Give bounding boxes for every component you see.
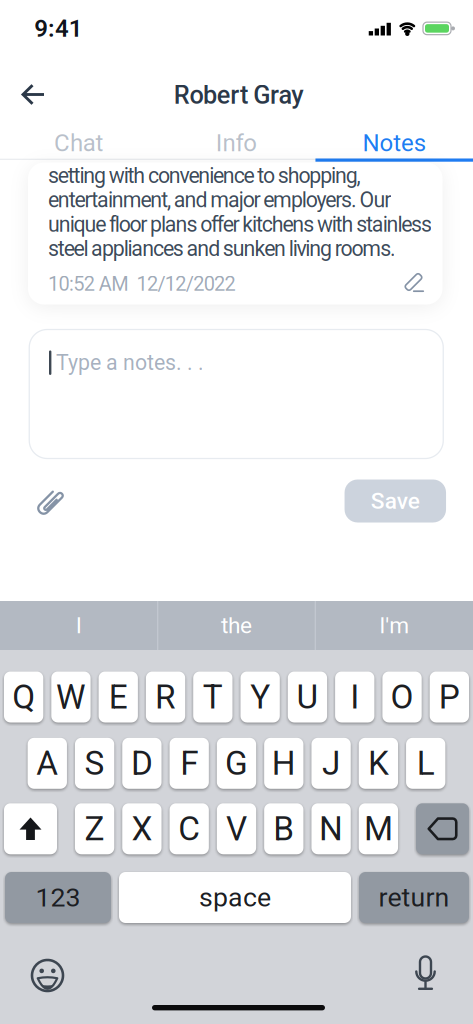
button[interactable]: the: [158, 601, 315, 650]
staticText: B: [273, 810, 294, 848]
staticText: E: [109, 678, 128, 716]
staticText: U: [296, 678, 318, 716]
staticText: Y: [250, 678, 270, 716]
staticText: Z: [85, 810, 105, 848]
button[interactable]: Shift: [4, 803, 57, 854]
staticText: H: [272, 744, 296, 782]
staticText: V: [226, 810, 247, 848]
button[interactable]: O: [382, 671, 422, 722]
staticText: A: [36, 744, 58, 782]
button[interactable]: Q: [4, 671, 43, 722]
staticText: R: [155, 678, 176, 716]
staticText: 9:41: [34, 15, 83, 42]
staticText: J: [322, 744, 340, 782]
button[interactable]: R: [146, 671, 185, 722]
staticText: Chat: [54, 129, 103, 157]
staticText: I'm: [379, 613, 409, 638]
button[interactable]: C: [169, 803, 209, 854]
staticText: F: [180, 744, 198, 782]
staticText: 123: [35, 882, 80, 913]
button[interactable]: Emoji: [27, 955, 67, 995]
button[interactable]: A: [28, 738, 67, 789]
staticText: Type a notes. . .: [56, 350, 204, 375]
button[interactable]: S: [75, 738, 114, 789]
button[interactable]: Notes: [315, 124, 473, 162]
button[interactable]: H: [264, 738, 303, 789]
button[interactable]: Back: [12, 74, 55, 114]
staticText: C: [178, 810, 200, 848]
button[interactable]: V: [217, 803, 256, 854]
button[interactable]: I'm: [316, 601, 473, 650]
button[interactable]: L: [406, 738, 445, 789]
staticText: D: [131, 744, 153, 782]
button[interactable]: M: [359, 803, 398, 854]
staticText: I: [76, 613, 82, 638]
staticText: O: [390, 678, 413, 716]
button[interactable]: I: [0, 601, 157, 650]
staticText: P: [439, 678, 460, 716]
button[interactable]: J: [311, 738, 351, 789]
button[interactable]: G: [217, 738, 256, 789]
staticText: 10:52 AM 12/12/2022: [48, 273, 236, 295]
button[interactable]: Z: [75, 803, 114, 854]
button[interactable]: space: [119, 872, 351, 923]
staticText: the: [221, 613, 252, 638]
button[interactable]: D: [122, 738, 161, 789]
button[interactable]: F: [169, 738, 209, 789]
staticText: return: [378, 882, 449, 913]
staticText: space: [199, 882, 271, 913]
staticText: T: [203, 678, 223, 716]
button[interactable]: W: [51, 671, 91, 722]
button[interactable]: K: [359, 738, 398, 789]
button[interactable]: Save: [345, 479, 446, 522]
staticText: Notes: [363, 129, 426, 157]
staticText: Q: [12, 678, 35, 716]
button[interactable]: N: [311, 803, 351, 854]
staticText: G: [225, 744, 248, 782]
staticText: Robert Gray: [174, 80, 303, 109]
button[interactable]: Y: [240, 671, 280, 722]
button[interactable]: P: [430, 671, 469, 722]
staticText: Save: [371, 488, 420, 514]
button[interactable]: Dictate: [405, 954, 445, 994]
staticText: M: [364, 810, 393, 848]
staticText: L: [417, 744, 435, 782]
button[interactable]: 123: [5, 872, 111, 923]
button[interactable]: E: [99, 671, 138, 722]
staticText: K: [368, 744, 389, 782]
button[interactable]: Type a notes: [29, 329, 443, 458]
button[interactable]: I: [335, 671, 374, 722]
button[interactable]: Delete: [416, 803, 469, 854]
button[interactable]: U: [288, 671, 327, 722]
button[interactable]: Info: [158, 124, 315, 162]
staticText: I: [350, 678, 359, 716]
staticText: S: [85, 744, 105, 782]
button[interactable]: T: [193, 671, 232, 722]
button[interactable]: return: [359, 872, 469, 923]
staticText: X: [131, 810, 152, 848]
staticText: W: [56, 678, 86, 716]
staticText: Info: [216, 129, 257, 157]
staticText: N: [319, 810, 343, 848]
staticText: setting with convenience to shopping, en…: [48, 163, 432, 261]
button[interactable]: Chat: [0, 124, 158, 162]
button[interactable]: Attach file: [33, 485, 67, 519]
button[interactable]: Edit note: [397, 266, 429, 298]
button[interactable]: X: [122, 803, 161, 854]
button[interactable]: B: [264, 803, 303, 854]
